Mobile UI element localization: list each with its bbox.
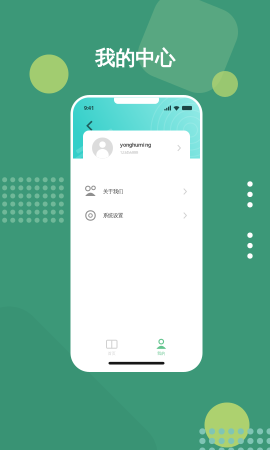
button[interactable]: Back	[73, 116, 101, 136]
staticText: 关于我们	[103, 188, 123, 195]
staticText: 我的	[157, 351, 165, 356]
button[interactable]: 系统设置	[73, 203, 200, 227]
button[interactable]: 我的	[136, 339, 186, 356]
button[interactable]: 关于我们	[73, 179, 200, 203]
staticText: 123456888	[120, 150, 138, 155]
button[interactable]: yonghuming	[83, 130, 190, 165]
staticText: 系统设置	[103, 212, 123, 219]
button[interactable]: 首页	[87, 339, 136, 356]
staticText: yonghuming	[120, 141, 151, 148]
staticText: 首页	[108, 351, 116, 356]
staticText: 9:41	[84, 104, 94, 112]
staticText: 我的中心	[95, 46, 175, 71]
